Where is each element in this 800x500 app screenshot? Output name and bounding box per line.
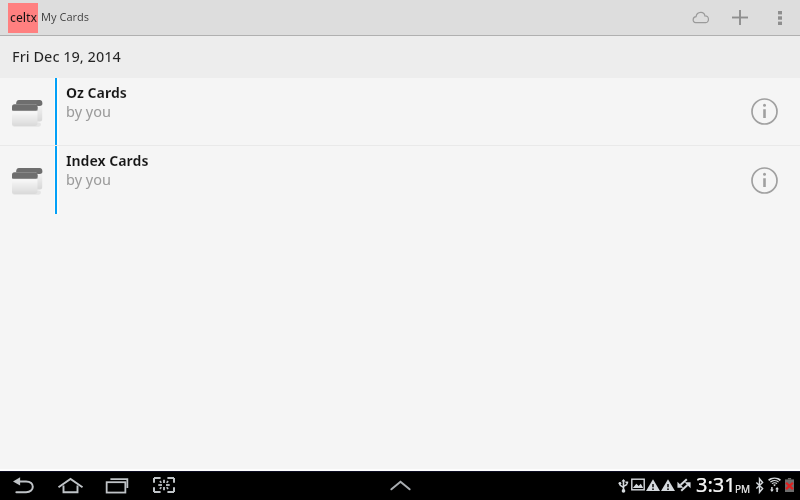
button[interactable]: Screenshot: [145, 472, 183, 500]
staticText: by you: [66, 169, 111, 189]
staticText: celtx: [10, 9, 38, 25]
button[interactable]: Show navigation: [383, 472, 418, 500]
button[interactable]: Oz Cards: [0, 78, 800, 145]
staticText: Index Cards: [66, 151, 149, 170]
button[interactable]: Add: [724, 0, 764, 35]
staticText: 3:31: [696, 471, 736, 498]
staticText: by you: [66, 101, 111, 121]
button[interactable]: Info: [750, 146, 800, 214]
button[interactable]: Info: [750, 78, 800, 145]
staticText: Fri Dec 19, 2014: [12, 46, 121, 66]
staticText: Oz Cards: [66, 83, 127, 102]
button[interactable]: celtx: [0, 0, 100, 35]
staticText: PM: [735, 482, 751, 496]
button[interactable]: More options: [764, 0, 800, 35]
button[interactable]: Home: [50, 472, 91, 500]
button[interactable]: Back: [5, 472, 42, 500]
button[interactable]: Index Cards: [0, 146, 800, 214]
staticText: My Cards: [41, 9, 89, 24]
button[interactable]: Sync to cloud: [676, 0, 724, 35]
button[interactable]: Recents: [98, 472, 136, 500]
